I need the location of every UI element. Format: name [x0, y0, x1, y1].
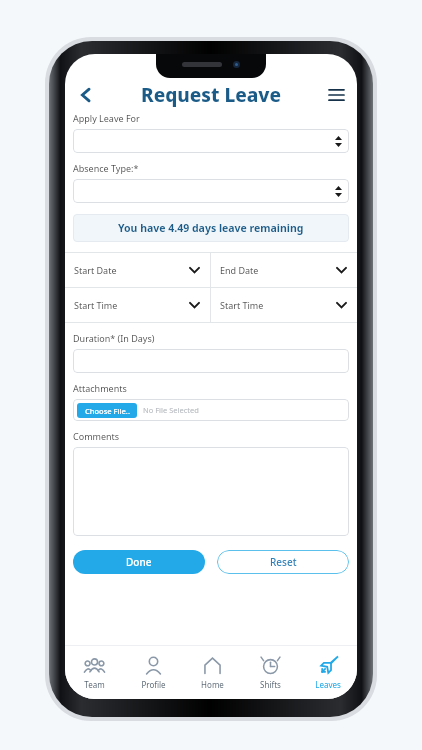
button[interactable]: Select option	[73, 129, 349, 153]
button[interactable]: Start Time	[65, 288, 210, 322]
button[interactable]: Back	[71, 80, 101, 110]
button[interactable]: Choose File..	[77, 403, 137, 418]
staticText: Profile	[141, 679, 166, 690]
staticText: No File Selected	[143, 405, 199, 415]
button[interactable]	[73, 447, 349, 536]
button[interactable]	[73, 349, 349, 373]
staticText: Home	[201, 679, 224, 690]
button[interactable]: Shifts	[241, 651, 299, 693]
button[interactable]: End Date	[211, 253, 357, 287]
button[interactable]: Profile	[124, 651, 183, 693]
staticText: Request Leave	[141, 82, 282, 108]
staticText: Shifts	[260, 679, 281, 690]
button[interactable]: Select option	[73, 179, 349, 203]
staticText: Comments	[73, 430, 120, 442]
staticText: Start Date	[74, 264, 117, 276]
staticText: Start Time	[220, 299, 264, 311]
button[interactable]: Start Time	[211, 288, 357, 322]
button[interactable]: Leaves	[299, 651, 357, 693]
staticText: Team	[84, 679, 105, 690]
staticText: Start Time	[74, 299, 118, 311]
staticText: Absence Type:*	[73, 162, 139, 174]
staticText: End Date	[220, 264, 259, 276]
staticText: Duration* (In Days)	[73, 332, 155, 344]
staticText: Attachments	[73, 382, 127, 394]
button[interactable]: Done	[73, 550, 205, 574]
staticText: Leaves	[315, 679, 341, 690]
staticText: You have 4.49 days leave remaining	[118, 221, 304, 235]
button[interactable]: Team	[65, 651, 124, 693]
staticText: Choose File..	[85, 406, 130, 416]
button[interactable]: Start Date	[65, 253, 210, 287]
staticText: Reset	[270, 555, 297, 569]
button[interactable]: Menu	[323, 82, 349, 108]
staticText: Done	[126, 555, 152, 569]
button[interactable]: Reset	[217, 550, 349, 574]
staticText: Apply Leave For	[73, 112, 140, 124]
button[interactable]: Home	[183, 651, 241, 693]
